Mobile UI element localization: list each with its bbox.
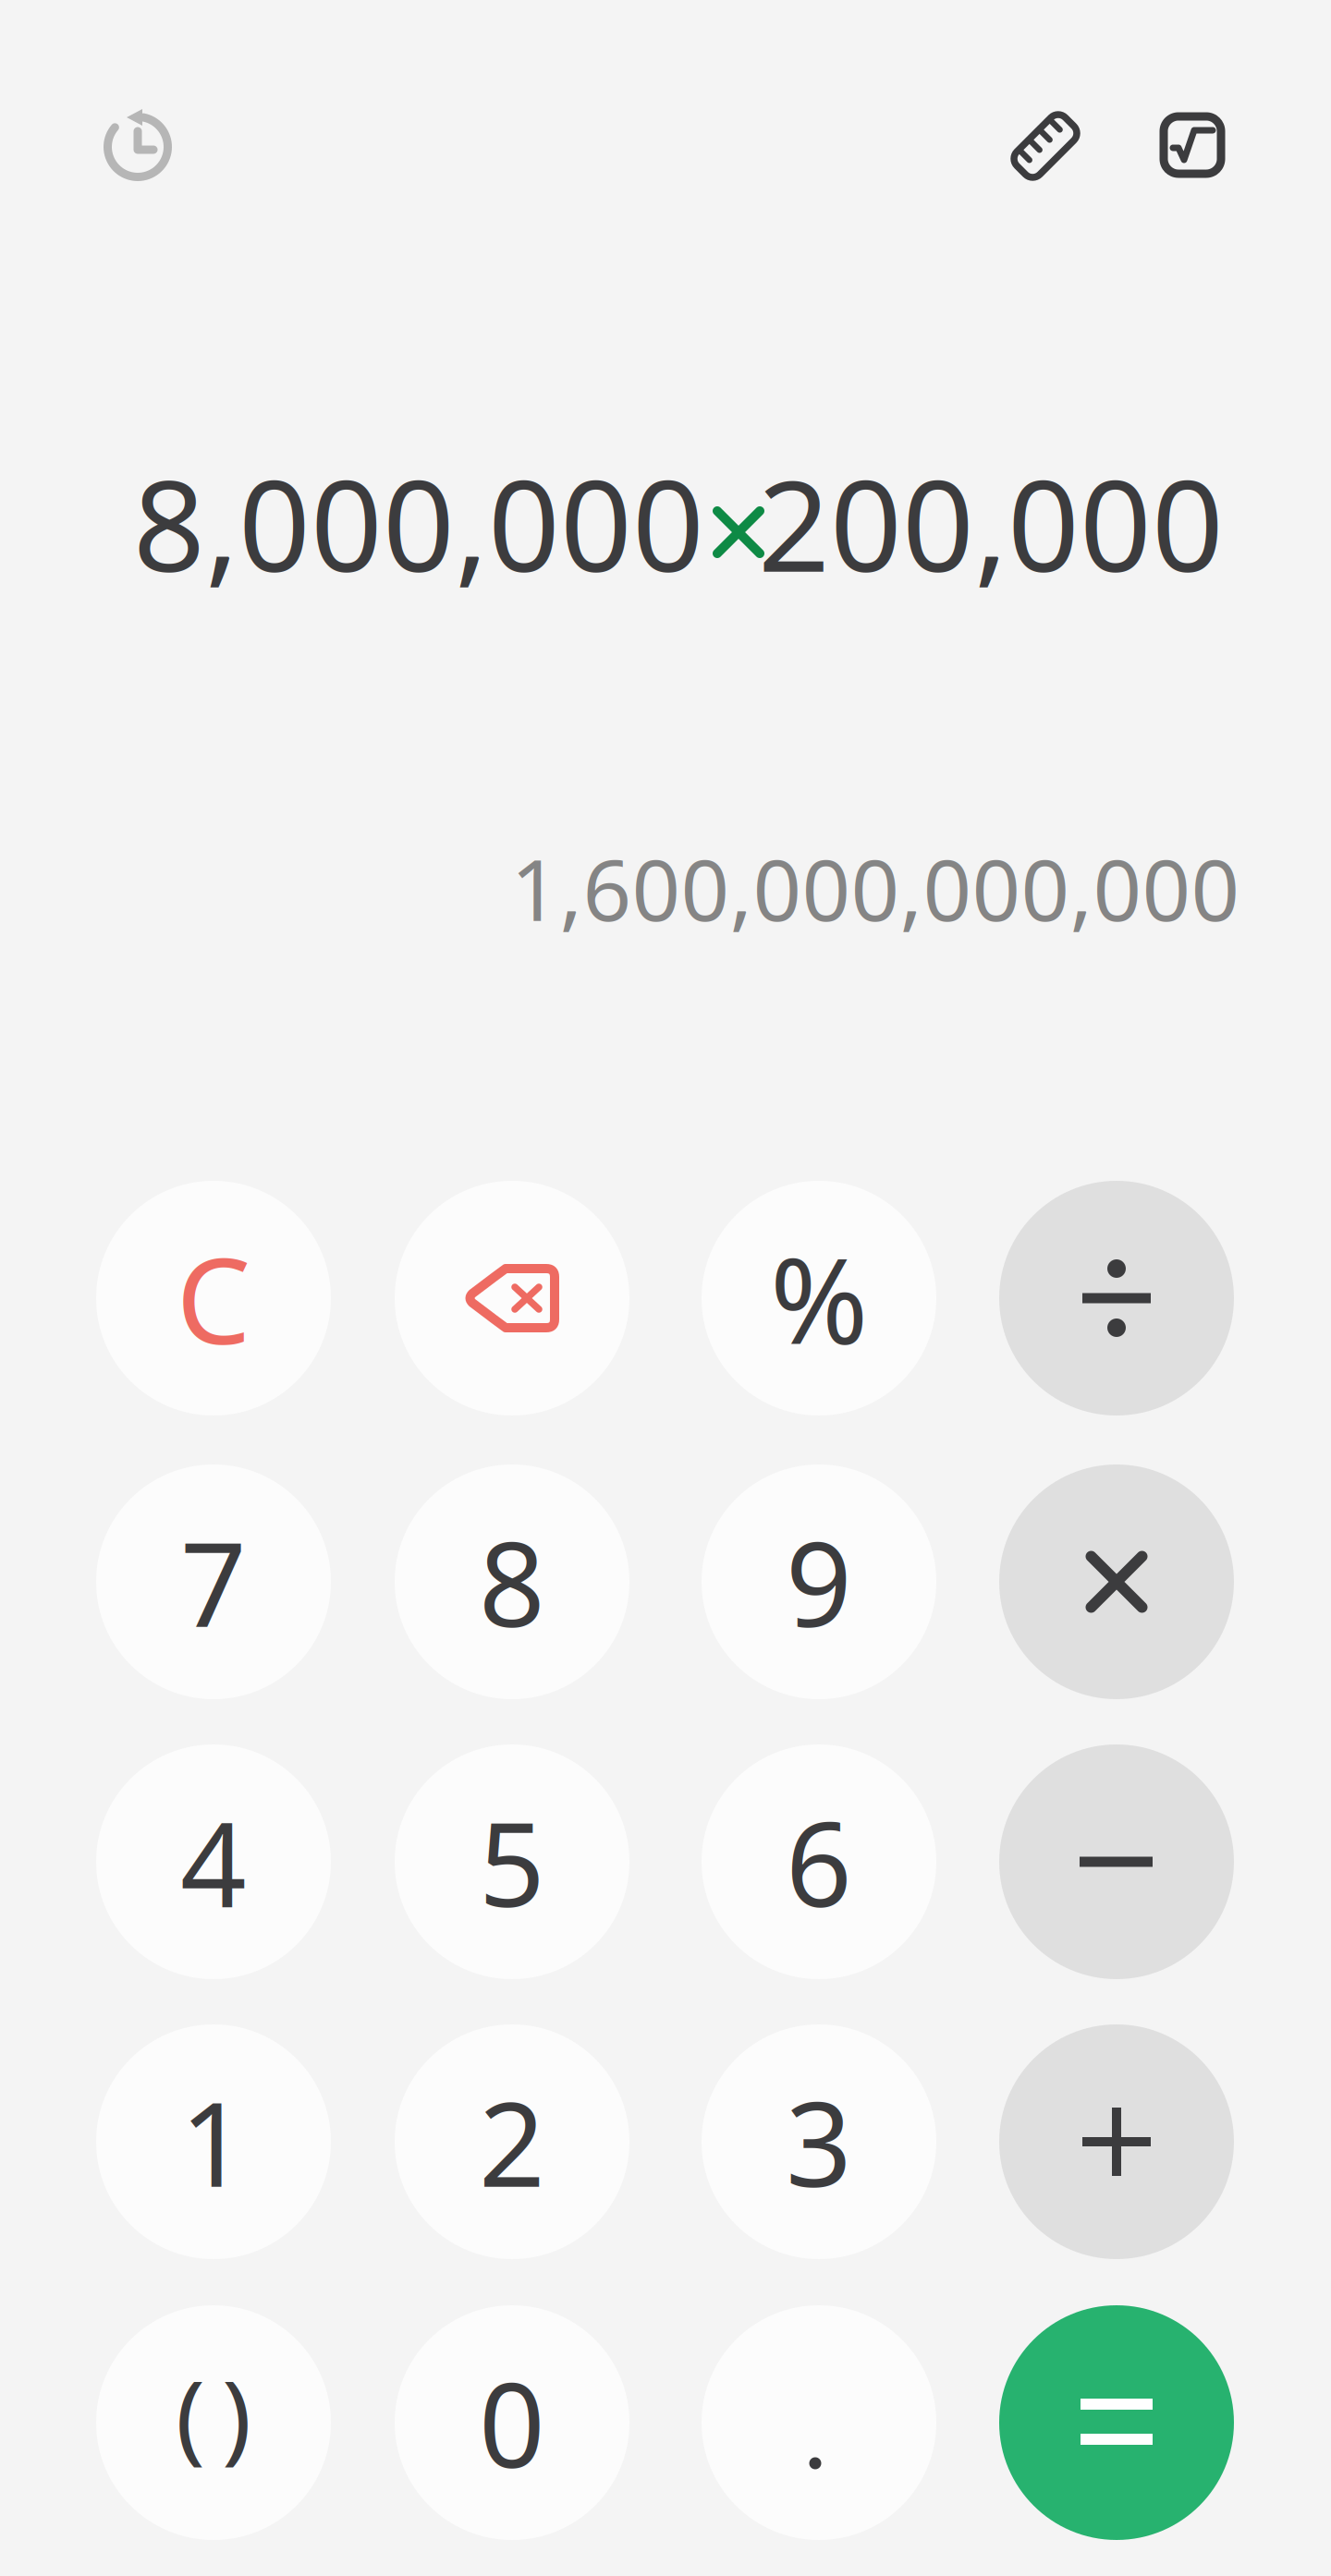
button[interactable]: 5 [395,1744,629,1979]
button[interactable]: Add [999,2024,1234,2259]
staticText: C [176,1220,251,1377]
button[interactable]: 6 [702,1744,936,1979]
button[interactable]: Unit converter [1008,109,1082,183]
staticText: 200,000 [758,440,1224,606]
staticText: 2 [479,2065,545,2219]
staticText: ( ) [176,2348,251,2479]
button[interactable]: ( ) [96,2305,331,2540]
button[interactable]: Equals [999,2305,1234,2540]
staticText: 6 [786,1785,852,1939]
staticText: % [770,1220,868,1377]
button[interactable]: 7 [96,1464,331,1699]
staticText: 1,600,000,000,000 [511,831,1240,944]
button[interactable]: 9 [702,1464,936,1699]
staticText: 1 [180,2065,247,2219]
button[interactable]: 8 [395,1464,629,1699]
button[interactable]: Multiply [999,1464,1234,1699]
staticText: 5 [479,1785,545,1939]
button[interactable]: Backspace [395,1181,629,1416]
staticText: 9 [786,1505,852,1659]
button[interactable]: 0 [395,2305,629,2540]
button[interactable]: 4 [96,1744,331,1979]
button[interactable]: 1 [96,2024,331,2259]
button[interactable]: C [96,1181,331,1416]
staticText: 4 [180,1785,247,1939]
button[interactable]: Subtract [999,1744,1234,1979]
staticText: 3 [786,2065,852,2219]
staticText: 0 [479,2346,545,2499]
button[interactable]: 2 [395,2024,629,2259]
button[interactable]: 3 [702,2024,936,2259]
button[interactable]: Decimal point [702,2305,936,2540]
button[interactable]: % [702,1181,936,1416]
staticText: 8 [479,1505,545,1659]
button[interactable]: History [96,99,179,195]
staticText: 7 [180,1505,247,1659]
button[interactable]: Scientific calculator [1162,115,1223,176]
button[interactable]: Divide [999,1181,1234,1416]
staticText: 8,000,000 [133,440,704,606]
